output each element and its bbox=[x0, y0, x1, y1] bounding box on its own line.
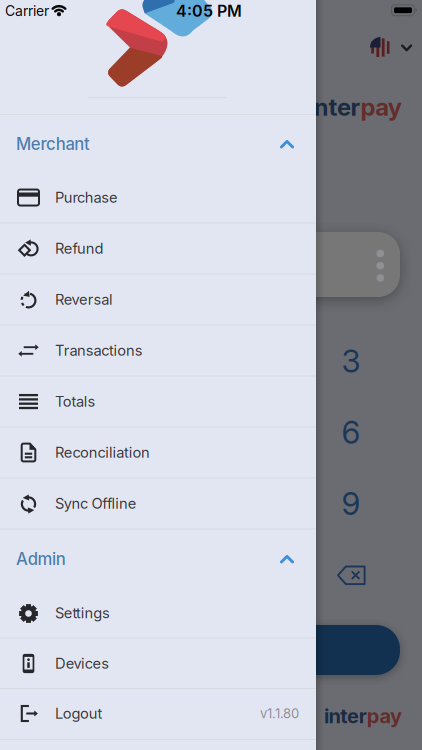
button[interactable]: Settings bbox=[0, 588, 316, 638]
staticText: Reversal bbox=[55, 291, 113, 308]
button[interactable]: Reconciliation bbox=[0, 427, 316, 477]
staticText: Carrier bbox=[5, 2, 49, 19]
staticText: Transactions bbox=[55, 342, 143, 359]
staticText: Refund bbox=[55, 240, 103, 257]
button[interactable]: Transactions bbox=[0, 325, 316, 375]
button[interactable]: 3 bbox=[311, 337, 391, 385]
staticText: inter bbox=[324, 704, 367, 728]
button[interactable]: 6 bbox=[311, 408, 391, 456]
button[interactable]: 4 bbox=[31, 408, 111, 456]
button[interactable]: Sync Offline bbox=[0, 478, 316, 528]
staticText: inter bbox=[308, 92, 361, 121]
staticText: 7 bbox=[62, 485, 79, 522]
staticText: 4 bbox=[61, 413, 81, 451]
button[interactable]: 7 bbox=[31, 480, 111, 528]
staticText: pay bbox=[367, 704, 402, 728]
button[interactable]: Purchase bbox=[22, 625, 400, 675]
staticText: 3 bbox=[341, 342, 360, 380]
button[interactable]: Totals bbox=[0, 376, 316, 426]
staticText: Reconciliation bbox=[55, 444, 150, 461]
button[interactable]: Devices bbox=[0, 638, 316, 688]
staticText: Devices bbox=[55, 655, 109, 672]
staticText: Admin bbox=[16, 549, 66, 569]
staticText: Totals bbox=[55, 393, 95, 410]
button[interactable]: Reversal bbox=[0, 274, 316, 324]
button[interactable]: 9 bbox=[311, 480, 391, 528]
staticText: 6 bbox=[341, 413, 360, 451]
button[interactable]: Refund bbox=[0, 223, 316, 273]
staticText: 4:05 PM bbox=[176, 1, 242, 21]
button[interactable]: Admin bbox=[0, 531, 316, 587]
button[interactable]: Delete bbox=[337, 565, 366, 586]
staticText: 1 bbox=[65, 342, 77, 380]
staticText: Sync Offline bbox=[55, 495, 137, 512]
button[interactable]: Merchant bbox=[0, 116, 316, 172]
button[interactable]: Purchase bbox=[0, 172, 316, 222]
staticText: pay bbox=[361, 92, 402, 121]
staticText: Purchase bbox=[55, 189, 118, 206]
staticText: Merchant bbox=[16, 134, 90, 154]
button[interactable]: 1 bbox=[31, 337, 111, 385]
button[interactable]: Change language bbox=[0, 0, 422, 750]
staticText: Settings bbox=[55, 604, 110, 622]
button[interactable]: Logout bbox=[0, 688, 316, 738]
staticText: Logout bbox=[55, 705, 102, 722]
staticText: 9 bbox=[341, 485, 360, 522]
staticText: v1.1.80 bbox=[260, 706, 299, 721]
